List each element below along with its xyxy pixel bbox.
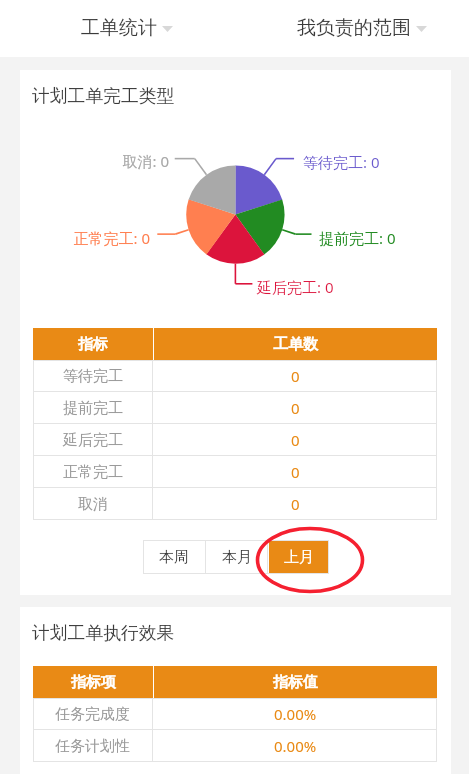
staticText: 计划工单执行效果 <box>32 622 175 644</box>
other: 计划工单完工类型饼图 <box>20 70 451 595</box>
staticText: 0 <box>291 430 300 450</box>
staticText: 指标 <box>78 335 108 354</box>
staticText: 提前完工: 0 <box>319 228 396 248</box>
button[interactable]: 我负责的范围 <box>234 0 469 57</box>
button[interactable]: 工单统计 <box>0 0 234 57</box>
staticText: 正常完工 <box>63 463 123 482</box>
staticText: 任务计划性 <box>55 737 130 756</box>
staticText: 延后完工 <box>63 431 123 450</box>
staticText: 0 <box>291 462 300 482</box>
staticText: 提前完工 <box>63 399 123 418</box>
staticText: 我负责的范围 <box>297 16 411 40</box>
staticText: 指标项 <box>71 673 116 692</box>
staticText: 等待完工: 0 <box>303 152 380 172</box>
staticText: 0 <box>291 494 300 514</box>
button[interactable]: 本周 <box>143 540 205 574</box>
staticText: 本月 <box>222 548 252 567</box>
staticText: 上月 <box>284 548 314 567</box>
staticText: 0 <box>291 366 300 386</box>
staticText: 计划工单完工类型 <box>32 85 175 107</box>
staticText: 等待完工 <box>63 367 123 386</box>
staticText: 工单数 <box>273 335 318 354</box>
button[interactable]: 本月 <box>206 540 267 574</box>
staticText: 取消: 0 <box>20 151 169 171</box>
staticText: 0 <box>291 398 300 418</box>
button[interactable]: 上月 <box>269 540 329 574</box>
staticText: 延后完工: 0 <box>257 277 334 297</box>
staticText: 0.00% <box>274 704 317 724</box>
staticText: 正常完工: 0 <box>20 228 150 248</box>
staticText: 本周 <box>159 548 189 567</box>
staticText: 任务完成度 <box>55 705 130 724</box>
staticText: 取消 <box>78 495 108 514</box>
staticText: 工单统计 <box>81 16 157 40</box>
staticText: 0.00% <box>274 736 317 756</box>
staticText: 指标值 <box>273 673 318 692</box>
